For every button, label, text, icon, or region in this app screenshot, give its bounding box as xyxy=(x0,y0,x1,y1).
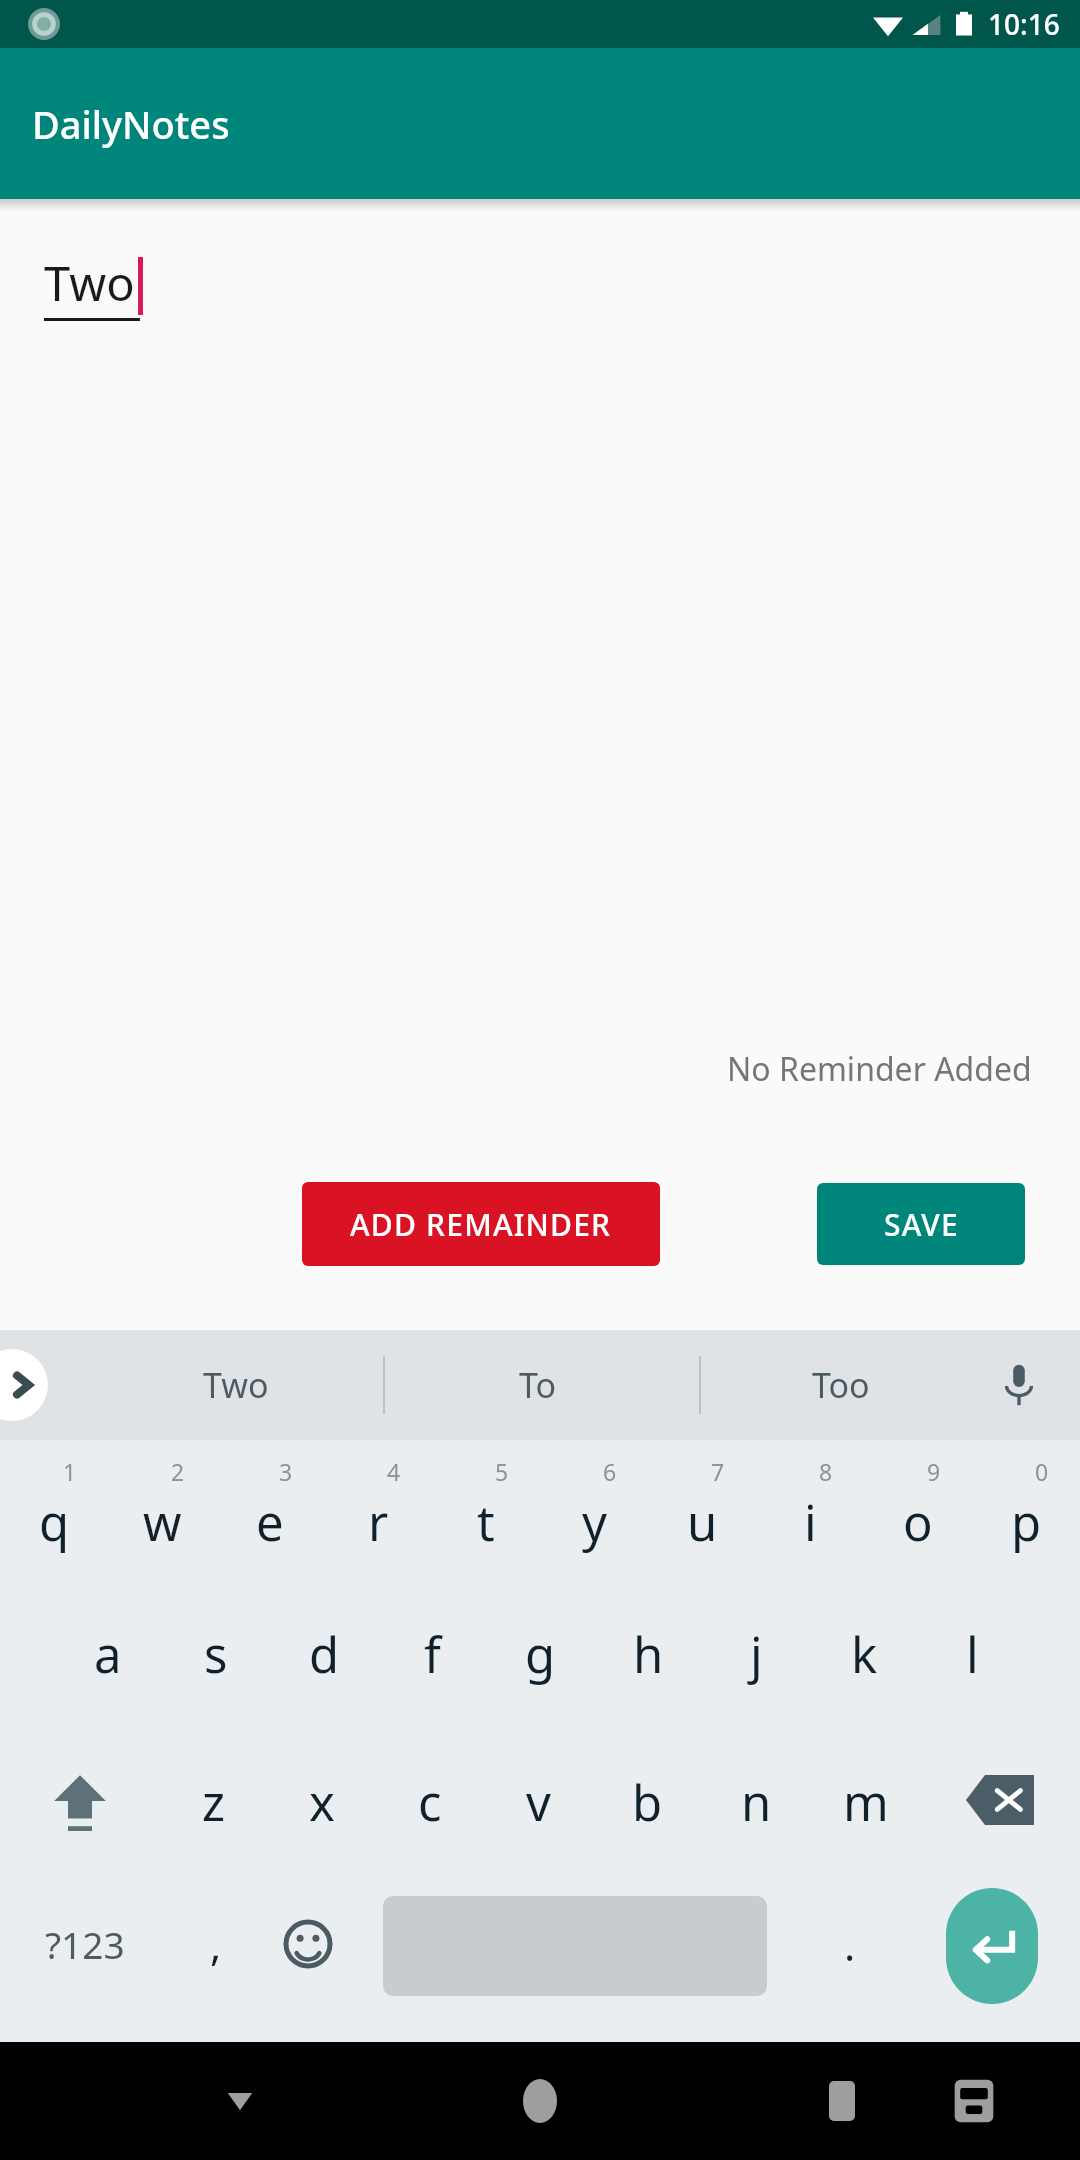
button[interactable]: 2 xyxy=(108,1440,216,1588)
staticText: 5 xyxy=(495,1456,509,1487)
button[interactable]: 3 xyxy=(216,1440,324,1588)
staticText: Too xyxy=(812,1362,870,1408)
button[interactable]: n xyxy=(702,1736,811,1884)
button[interactable]: g xyxy=(486,1588,594,1736)
staticText: a xyxy=(94,1621,122,1688)
staticText: j xyxy=(750,1621,763,1688)
button[interactable]: 5 xyxy=(432,1440,540,1588)
staticText: k xyxy=(851,1621,878,1688)
staticText: e xyxy=(256,1489,284,1556)
staticText: , xyxy=(210,1916,222,1973)
staticText: y xyxy=(582,1489,607,1556)
staticText: 6 xyxy=(603,1456,617,1487)
staticText: To xyxy=(519,1362,557,1408)
staticText: Two xyxy=(203,1362,269,1408)
staticText: 0 xyxy=(1035,1456,1049,1487)
staticText: l xyxy=(966,1621,979,1688)
button[interactable]: ?123 xyxy=(0,1884,170,2032)
button[interactable]: v xyxy=(484,1736,593,1884)
staticText: o xyxy=(903,1489,933,1556)
staticText: m xyxy=(843,1769,889,1836)
button[interactable]: Backspace xyxy=(920,1736,1080,1884)
button[interactable]: 4 xyxy=(324,1440,432,1588)
staticText: 9 xyxy=(927,1456,941,1487)
staticText: q xyxy=(39,1489,70,1556)
staticText: s xyxy=(204,1621,228,1688)
staticText: 7 xyxy=(711,1456,725,1487)
staticText: d xyxy=(309,1621,340,1688)
staticText: i xyxy=(804,1489,817,1556)
button[interactable]: k xyxy=(810,1588,918,1736)
staticText: u xyxy=(687,1489,718,1556)
button[interactable]: 9 xyxy=(864,1440,972,1588)
staticText: v xyxy=(526,1769,551,1836)
staticText: No Reminder Added xyxy=(727,1047,1032,1091)
button[interactable]: Emoji xyxy=(262,1884,354,2032)
button[interactable]: . xyxy=(796,1884,904,2032)
staticText: t xyxy=(477,1489,495,1556)
button[interactable]: x xyxy=(268,1736,376,1884)
staticText: c xyxy=(418,1769,442,1836)
button[interactable]: 7 xyxy=(648,1440,756,1588)
button[interactable]: b xyxy=(593,1736,702,1884)
staticText: . xyxy=(844,1916,856,1973)
staticText: 1 xyxy=(63,1456,77,1487)
button[interactable]: h xyxy=(594,1588,702,1736)
staticText: 10:16 xyxy=(988,5,1060,43)
button[interactable]: j xyxy=(702,1588,810,1736)
button[interactable]: f xyxy=(378,1588,486,1736)
button[interactable]: 1 xyxy=(0,1440,108,1588)
staticText: 3 xyxy=(279,1456,293,1487)
staticText: 8 xyxy=(819,1456,833,1487)
button[interactable]: m xyxy=(811,1736,920,1884)
button[interactable]: Recents xyxy=(792,2051,892,2151)
staticText: n xyxy=(741,1769,772,1836)
staticText: ADD REMAINDER xyxy=(350,1204,612,1245)
button[interactable]: To xyxy=(398,1330,678,1440)
staticText: g xyxy=(525,1621,556,1688)
staticText: p xyxy=(1011,1489,1042,1556)
staticText: SAVE xyxy=(884,1204,959,1245)
staticText: h xyxy=(633,1621,664,1688)
staticText: ?123 xyxy=(45,1919,125,1969)
staticText: w xyxy=(143,1489,182,1556)
button[interactable]: 0 xyxy=(972,1440,1080,1588)
staticText: b xyxy=(632,1769,663,1836)
staticText: f xyxy=(424,1621,441,1688)
button[interactable]: 6 xyxy=(540,1440,648,1588)
button[interactable]: Enter xyxy=(904,1884,1080,2032)
button[interactable]: s xyxy=(162,1588,270,1736)
button[interactable]: Shift xyxy=(0,1736,160,1884)
button[interactable]: a xyxy=(54,1588,162,1736)
button[interactable]: 8 xyxy=(756,1440,864,1588)
button[interactable]: Too xyxy=(701,1330,981,1440)
button[interactable]: c xyxy=(376,1736,484,1884)
staticText: Two xyxy=(44,251,135,315)
button[interactable]: Switch keyboard xyxy=(924,2051,1024,2151)
button[interactable]: z xyxy=(160,1736,268,1884)
button[interactable]: ADD REMAINDER xyxy=(302,1182,660,1266)
button[interactable]: SAVE xyxy=(817,1183,1025,1265)
staticText: 4 xyxy=(387,1456,401,1487)
button[interactable]: Two xyxy=(96,1330,376,1440)
button[interactable]: d xyxy=(270,1588,378,1736)
staticText: z xyxy=(202,1769,226,1836)
button[interactable]: Home xyxy=(490,2051,590,2151)
staticText: x xyxy=(309,1769,335,1836)
button[interactable]: , xyxy=(170,1884,262,2032)
button[interactable]: l xyxy=(918,1588,1026,1736)
button[interactable]: Voice input xyxy=(982,1348,1056,1422)
button[interactable]: Expand suggestions xyxy=(0,1349,48,1421)
staticText: 2 xyxy=(171,1456,185,1487)
staticText: DailyNotes xyxy=(32,98,230,150)
staticText: r xyxy=(368,1489,389,1556)
button[interactable]: Back xyxy=(190,2051,290,2151)
